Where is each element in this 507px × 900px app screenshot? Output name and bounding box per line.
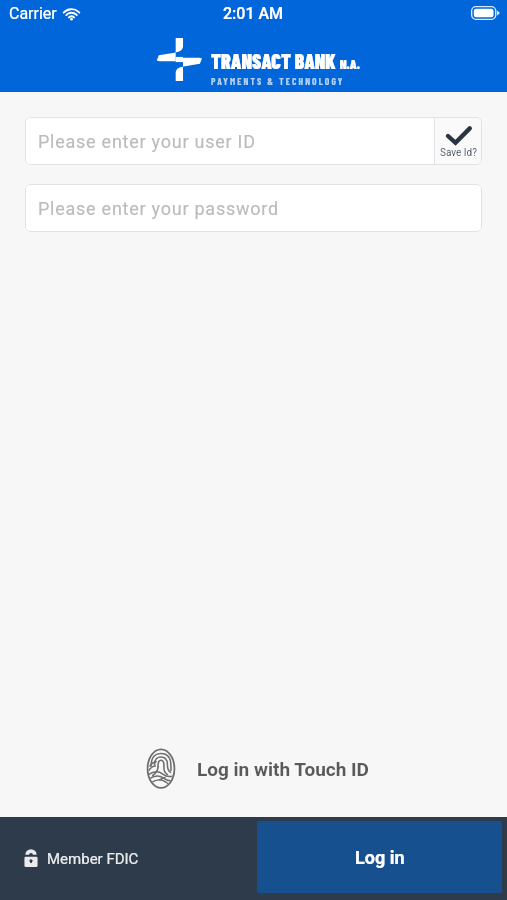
staticText: Please enter your password	[38, 198, 279, 219]
staticText: Carrier	[9, 4, 57, 23]
button[interactable]: Please enter your user ID	[25, 117, 434, 165]
staticText: Save Id?	[440, 147, 477, 159]
other: Wi-Fi	[62, 6, 81, 20]
staticText: Member FDIC	[47, 850, 139, 868]
staticText: Please enter your user ID	[38, 131, 256, 152]
button[interactable]: Log in with Touch ID	[133, 743, 375, 794]
button[interactable]: Member FDIC	[0, 841, 153, 877]
staticText: 2:01 AM	[223, 4, 284, 23]
staticText: TRANSACT BANK N.A.	[211, 49, 360, 73]
button[interactable]: Please enter your password	[25, 184, 482, 232]
staticText: Log in	[355, 847, 405, 868]
button[interactable]: Log in	[257, 821, 502, 893]
button[interactable]: Save Id	[434, 117, 482, 165]
staticText: Log in with Touch ID	[197, 758, 369, 780]
staticText: PAYMENTS & TECHNOLOGY	[211, 75, 345, 86]
